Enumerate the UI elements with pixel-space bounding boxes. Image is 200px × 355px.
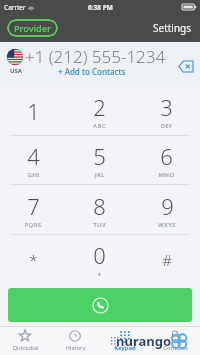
staticText: 1 bbox=[27, 96, 40, 126]
staticText: +1 (212) 555-1234 bbox=[25, 45, 166, 68]
button[interactable]: 4 bbox=[0, 136, 66, 184]
button[interactable]: Quickdial bbox=[0, 326, 50, 355]
button[interactable]: 6 bbox=[133, 136, 200, 184]
staticText: 4 bbox=[27, 141, 40, 171]
button[interactable]: 2 bbox=[66, 87, 133, 135]
staticText: MNO bbox=[158, 171, 175, 179]
staticText: 6 bbox=[160, 141, 173, 171]
staticText: Carrier bbox=[4, 3, 26, 12]
staticText: 2 bbox=[93, 92, 106, 122]
button[interactable]: 8 bbox=[66, 185, 133, 234]
staticText: 6:38 PM bbox=[88, 3, 113, 12]
button[interactable]: History bbox=[50, 326, 100, 355]
staticText: 7 bbox=[27, 191, 40, 221]
button[interactable]: Delete bbox=[176, 56, 196, 76]
button[interactable]: 1 bbox=[0, 87, 66, 135]
staticText: ABC bbox=[93, 122, 106, 130]
button[interactable]: Settings bbox=[145, 16, 200, 40]
staticText: TUV bbox=[93, 221, 106, 229]
staticText: Quickdial bbox=[12, 344, 39, 352]
staticText: 5 bbox=[93, 141, 106, 171]
staticText: Provider bbox=[14, 22, 51, 34]
button[interactable]: * bbox=[0, 235, 66, 284]
button[interactable]: # bbox=[133, 235, 200, 284]
staticText: DEF bbox=[160, 122, 173, 130]
staticText: Settings bbox=[153, 21, 192, 35]
staticText: 0 bbox=[93, 240, 106, 270]
staticText: History bbox=[65, 344, 86, 352]
staticText: Contacts bbox=[163, 344, 188, 352]
button[interactable]: 5 bbox=[66, 136, 133, 184]
staticText: WXYZ bbox=[158, 221, 176, 229]
staticText: 8 bbox=[93, 191, 106, 221]
button[interactable]: 3 bbox=[133, 87, 200, 135]
staticText: * bbox=[29, 250, 38, 270]
staticText: JKL bbox=[95, 171, 105, 179]
staticText: + Add to Contacts bbox=[58, 66, 126, 77]
button[interactable]: Call bbox=[8, 288, 192, 322]
button[interactable]: 7 bbox=[0, 185, 66, 234]
staticText: 3 bbox=[160, 92, 173, 122]
staticText: + bbox=[97, 270, 102, 280]
staticText: GHI bbox=[27, 171, 40, 179]
button[interactable]: + Add to Contacts bbox=[55, 65, 129, 78]
staticText: PQRS bbox=[24, 221, 42, 229]
staticText: nurango bbox=[116, 332, 172, 350]
button[interactable]: 0 bbox=[66, 235, 133, 284]
staticText: Keypad bbox=[114, 344, 136, 352]
button[interactable]: Keypad bbox=[100, 326, 150, 355]
staticText: USA bbox=[10, 67, 22, 75]
button[interactable]: Contacts bbox=[150, 326, 200, 355]
button[interactable]: Provider bbox=[7, 19, 58, 37]
staticText: 9 bbox=[161, 191, 174, 221]
staticText: # bbox=[162, 250, 172, 270]
button[interactable]: 9 bbox=[133, 185, 200, 234]
